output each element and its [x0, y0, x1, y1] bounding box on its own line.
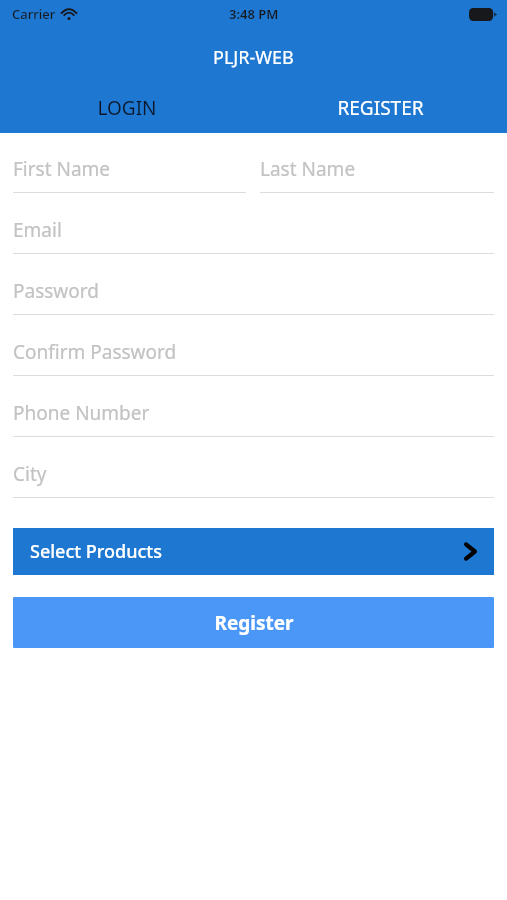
- button[interactable]: LOGIN: [0, 90, 253, 126]
- button[interactable]: City: [0, 450, 507, 511]
- button[interactable]: Confirm Password: [0, 328, 507, 389]
- staticText: Confirm Password: [13, 339, 177, 365]
- staticText: Register: [214, 610, 294, 636]
- button[interactable]: Last Name: [253, 145, 507, 206]
- staticText: First Name: [13, 156, 111, 182]
- other: Open product selection: [463, 541, 477, 562]
- staticText: 3:48 PM: [229, 5, 279, 23]
- staticText: Select Products: [30, 539, 162, 564]
- staticText: City: [13, 461, 47, 487]
- button[interactable]: Register: [13, 597, 494, 648]
- staticText: PLJR-WEB: [213, 45, 294, 70]
- staticText: REGISTER: [337, 95, 424, 121]
- staticText: LOGIN: [97, 95, 157, 121]
- button[interactable]: REGISTER: [253, 90, 507, 126]
- staticText: Password: [13, 278, 99, 304]
- button[interactable]: Password: [0, 267, 507, 328]
- button[interactable]: Email: [0, 206, 507, 267]
- button[interactable]: Phone Number: [0, 389, 507, 450]
- button[interactable]: Select Products: [13, 528, 494, 575]
- other: Wi-Fi signal: [61, 8, 77, 20]
- staticText: Last Name: [260, 156, 356, 182]
- staticText: Email: [13, 217, 62, 243]
- other: Battery full: [469, 8, 497, 21]
- staticText: Carrier: [12, 5, 56, 23]
- button[interactable]: First Name: [0, 145, 253, 206]
- staticText: Phone Number: [13, 400, 150, 426]
